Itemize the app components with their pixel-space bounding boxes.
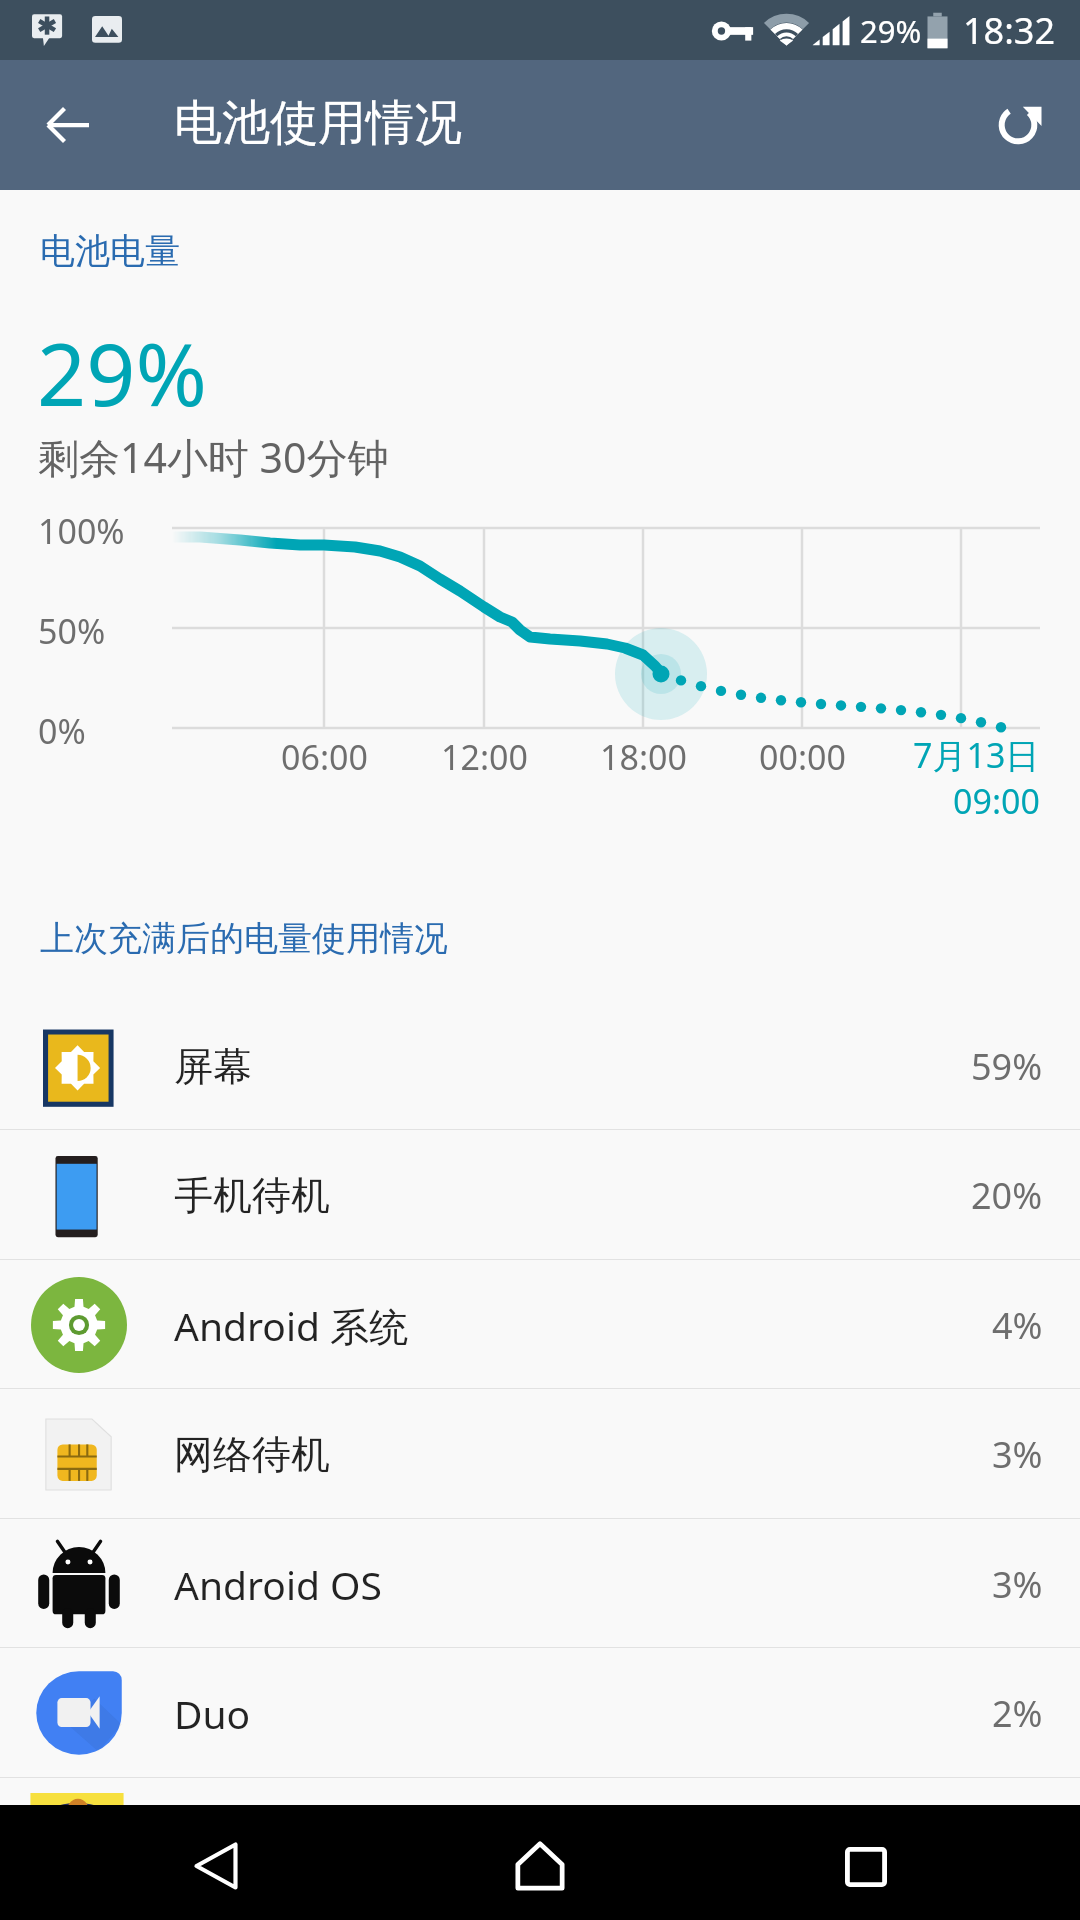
button[interactable]: Android OS	[0, 1519, 1080, 1649]
staticText: 09:00	[953, 778, 1040, 824]
staticText: Duo	[174, 1687, 251, 1740]
staticText: 12:00	[441, 734, 528, 780]
staticText: 00:00	[759, 734, 846, 780]
staticText: 06:00	[281, 734, 368, 780]
button[interactable]: 屏幕	[0, 1001, 1080, 1131]
button[interactable]: Refresh	[976, 83, 1060, 167]
staticText: 59%	[971, 1042, 1043, 1091]
staticText: 50%	[38, 608, 106, 654]
button[interactable]: Duo	[0, 1648, 1080, 1778]
staticText: 3%	[992, 1430, 1043, 1479]
staticText: 20%	[971, 1171, 1043, 1220]
staticText: 2%	[992, 1689, 1043, 1738]
staticText: 0%	[38, 708, 86, 754]
staticText: Android OS	[174, 1558, 382, 1611]
button[interactable]: 网络待机	[0, 1389, 1080, 1519]
staticText: 3%	[992, 1560, 1043, 1609]
staticText: 4%	[992, 1301, 1043, 1350]
staticText: 18:32	[963, 6, 1056, 55]
staticText: 29%	[37, 314, 207, 431]
staticText: 网络待机	[174, 1430, 330, 1479]
staticText: 手机待机	[174, 1171, 330, 1220]
staticText: Android 系统	[174, 1299, 409, 1352]
button[interactable]: 手机待机	[0, 1130, 1080, 1260]
button[interactable]: Back	[26, 83, 110, 167]
staticText: 电池电量	[40, 229, 180, 273]
staticText: 电池使用情况	[174, 93, 462, 153]
button[interactable]: Recent apps	[810, 1811, 922, 1920]
staticText: 29%	[860, 10, 922, 52]
staticText: 上次充满后的电量使用情况	[40, 917, 448, 960]
staticText: 剩余14小时 30分钟	[38, 429, 389, 485]
staticText: 屏幕	[174, 1042, 252, 1091]
button[interactable]: Home	[484, 1810, 596, 1920]
staticText: 100%	[38, 508, 125, 554]
button[interactable]: Android 系统	[0, 1260, 1080, 1390]
button[interactable]: Back	[160, 1810, 272, 1920]
staticText: 7月13日	[913, 732, 1040, 778]
staticText: 18:00	[600, 734, 687, 780]
